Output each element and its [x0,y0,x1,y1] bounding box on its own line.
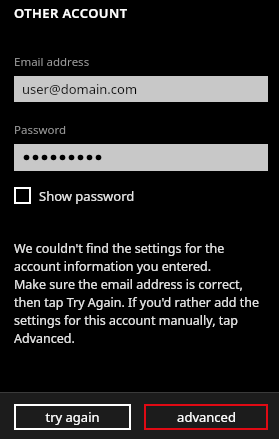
staticText: Password [14,122,67,138]
staticText: try again [45,408,100,426]
button[interactable]: try again [14,404,131,430]
button[interactable] [14,144,268,171]
button[interactable]: user@domain.com [14,76,268,102]
staticText: Email address [14,54,90,70]
staticText: Show password [39,187,135,205]
staticText: user@domain.com [22,80,138,98]
button[interactable]: advanced [144,404,268,430]
staticText: OTHER ACCOUNT [14,4,128,22]
staticText: advanced [177,408,236,426]
staticText: We couldn't find the settings for the ac… [14,240,269,347]
button[interactable]: Show password [14,183,268,208]
